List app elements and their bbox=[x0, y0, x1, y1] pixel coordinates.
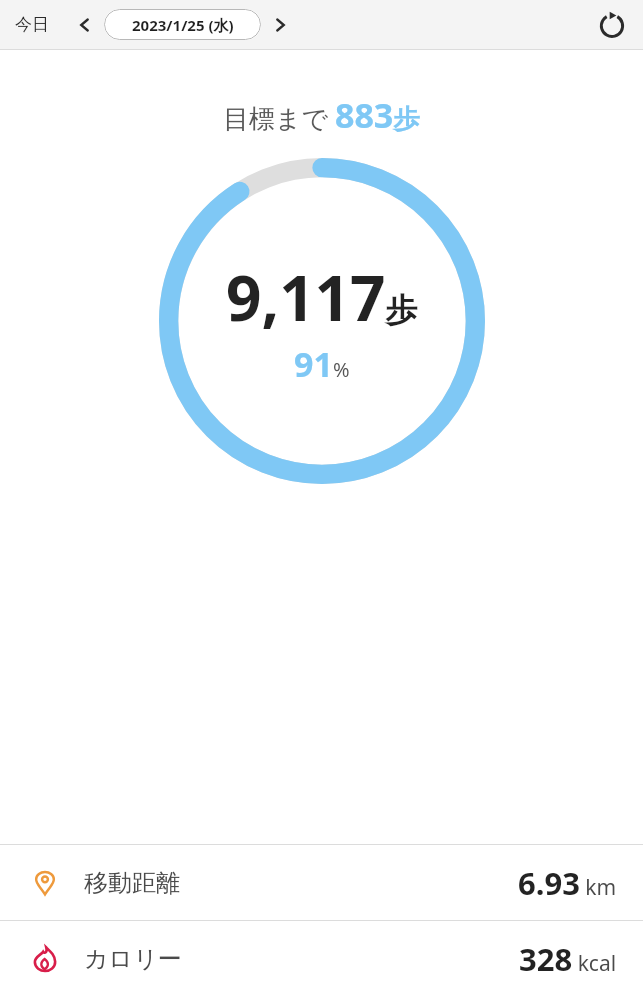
staticText: 91% bbox=[294, 341, 350, 387]
staticText: カロリー bbox=[84, 944, 182, 974]
staticText: 目標まで 883歩 bbox=[223, 92, 420, 138]
button[interactable]: Next day bbox=[265, 9, 297, 41]
staticText: 移動距離 bbox=[84, 868, 180, 898]
other: Distance bbox=[30, 868, 60, 898]
staticText: 6.93 km bbox=[518, 862, 617, 904]
staticText: 9,117歩 bbox=[226, 255, 418, 339]
button[interactable]: Refresh bbox=[589, 2, 635, 48]
button[interactable]: Distance bbox=[0, 845, 643, 920]
button[interactable]: 2023/1/25 (水) bbox=[104, 9, 261, 40]
staticText: 2023/1/25 (水) bbox=[132, 15, 234, 35]
button[interactable]: Calories bbox=[0, 921, 643, 996]
other: Calories bbox=[30, 944, 60, 974]
staticText: 今日 bbox=[15, 14, 49, 35]
button[interactable]: Previous day bbox=[68, 9, 100, 41]
button[interactable]: 今日 bbox=[0, 8, 64, 41]
staticText: 328 kcal bbox=[519, 938, 617, 980]
